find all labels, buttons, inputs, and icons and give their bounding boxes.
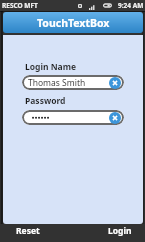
button[interactable]: Login: [89, 224, 145, 242]
button[interactable]: Clear text: [109, 77, 121, 89]
button[interactable]: Reset: [0, 224, 56, 242]
staticText: Password: [25, 95, 66, 107]
staticText: RESCO MFT: [2, 1, 38, 10]
button[interactable]: TouchTextBox: [3, 12, 143, 33]
button[interactable]: Thomas Smith: [22, 75, 124, 90]
staticText: Thomas Smith: [28, 77, 86, 89]
button[interactable]: Clear text: [109, 112, 121, 124]
staticText: 9:24 AM: [118, 1, 144, 10]
button[interactable]: [22, 110, 124, 125]
staticText: Login: [108, 225, 132, 237]
staticText: Login Name: [25, 61, 77, 73]
staticText: Reset: [16, 225, 40, 237]
staticText: TouchTextBox: [37, 16, 110, 30]
